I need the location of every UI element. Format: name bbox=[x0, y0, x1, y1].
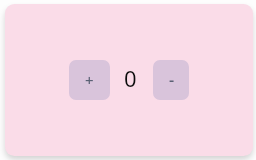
staticText: - bbox=[169, 69, 175, 91]
staticText: 0 bbox=[124, 63, 137, 93]
button[interactable]: Decrement bbox=[153, 60, 189, 100]
staticText: + bbox=[85, 70, 94, 90]
button[interactable]: Increment bbox=[69, 60, 110, 100]
